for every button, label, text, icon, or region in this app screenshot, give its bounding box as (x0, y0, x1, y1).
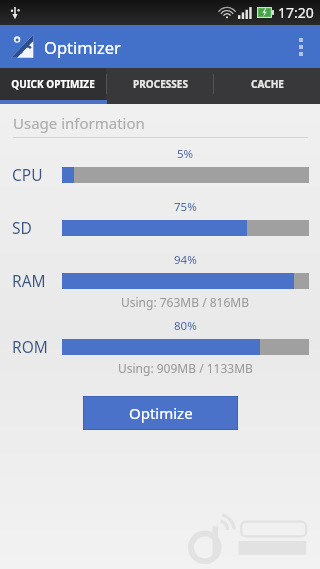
staticText: CACHE (251, 77, 284, 91)
staticText: Usage information (13, 113, 145, 133)
button[interactable]: Optimize (84, 397, 237, 429)
staticText: Optimizer (44, 36, 121, 58)
staticText: 80% (174, 318, 197, 334)
button[interactable]: QUICK OPTIMIZE (0, 68, 106, 100)
button[interactable]: CACHE (214, 68, 320, 100)
staticText: RAM (12, 270, 46, 291)
staticText: 17:20 (278, 3, 314, 22)
staticText: CPU (12, 164, 43, 185)
staticText: SD (12, 217, 32, 238)
staticText: PROCESSES (133, 77, 188, 91)
staticText: QUICK OPTIMIZE (11, 77, 95, 91)
staticText: Optimize (129, 403, 193, 423)
button[interactable]: More options (282, 25, 320, 68)
staticText: ROM (12, 336, 48, 357)
button[interactable]: PROCESSES (107, 68, 213, 100)
staticText: Using: 909MB / 1133MB (118, 360, 253, 376)
staticText: Using: 763MB / 816MB (121, 294, 250, 310)
staticText: 75% (174, 199, 197, 215)
staticText: 5% (177, 146, 194, 162)
staticText: 94% (174, 252, 197, 268)
